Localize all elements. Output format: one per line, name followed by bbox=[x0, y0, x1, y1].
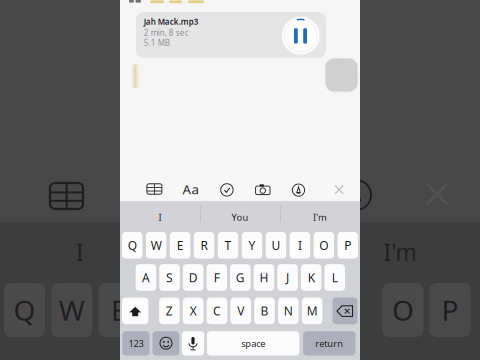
staticText: space bbox=[241, 337, 265, 350]
staticText: D bbox=[189, 269, 198, 285]
button[interactable]: I bbox=[290, 232, 310, 259]
staticText: F bbox=[214, 269, 220, 285]
staticText: Q bbox=[128, 237, 137, 253]
button[interactable]: P bbox=[337, 232, 358, 259]
button[interactable]: E bbox=[170, 232, 190, 259]
staticText: C bbox=[213, 303, 221, 319]
button[interactable]: Y bbox=[242, 232, 262, 259]
button[interactable]: Close bbox=[334, 185, 344, 194]
button[interactable]: O bbox=[314, 232, 334, 259]
button[interactable]: Z bbox=[159, 298, 180, 324]
staticText: S bbox=[166, 269, 173, 285]
button[interactable]: V bbox=[230, 298, 251, 324]
staticText: V bbox=[237, 303, 244, 319]
staticText: N bbox=[284, 303, 293, 319]
button[interactable]: return bbox=[303, 331, 355, 356]
button[interactable]: 123 bbox=[122, 331, 150, 356]
button[interactable]: F bbox=[206, 264, 227, 291]
staticText: G bbox=[236, 269, 245, 285]
staticText: K bbox=[308, 269, 315, 285]
staticText: Q bbox=[13, 291, 35, 329]
button[interactable]: M bbox=[302, 298, 322, 324]
button[interactable]: Table bbox=[147, 184, 162, 194]
staticText: Aa bbox=[182, 180, 198, 198]
staticText: I'm bbox=[383, 237, 416, 267]
staticText: return bbox=[315, 337, 343, 350]
staticText: I bbox=[76, 237, 84, 267]
button[interactable]: Checklist bbox=[221, 184, 233, 196]
button[interactable]: You bbox=[200, 204, 280, 230]
button[interactable]: Emoji bbox=[152, 331, 179, 356]
button[interactable]: J bbox=[277, 264, 298, 291]
staticText: P bbox=[344, 237, 351, 253]
staticText: E bbox=[177, 237, 184, 253]
staticText: Jah Mack.mp3 bbox=[144, 16, 199, 27]
staticText: E bbox=[111, 291, 127, 329]
staticText: I bbox=[298, 237, 302, 253]
button[interactable]: Pause bbox=[281, 16, 321, 56]
staticText: W bbox=[151, 237, 162, 253]
button[interactable]: Q bbox=[122, 232, 142, 259]
button[interactable]: I bbox=[120, 204, 200, 230]
button[interactable]: Camera bbox=[256, 184, 270, 195]
button[interactable]: T bbox=[218, 232, 238, 259]
button[interactable]: Delete bbox=[332, 298, 357, 324]
button[interactable]: H bbox=[254, 264, 274, 291]
staticText: 123 bbox=[128, 337, 143, 350]
staticText: U bbox=[271, 237, 280, 253]
staticText: X bbox=[190, 303, 197, 319]
button[interactable]: C bbox=[207, 298, 227, 324]
staticText: 5.1 MB bbox=[144, 37, 170, 48]
staticText: Y bbox=[248, 237, 255, 253]
button[interactable]: Text format bbox=[178, 183, 202, 195]
button[interactable]: G bbox=[230, 264, 251, 291]
button[interactable]: X bbox=[183, 298, 203, 324]
staticText: 2 min, 8 sec bbox=[144, 27, 189, 38]
button[interactable]: Dictate bbox=[182, 331, 204, 356]
staticText: T bbox=[224, 237, 231, 253]
button[interactable]: U bbox=[266, 232, 286, 259]
staticText: I bbox=[158, 211, 161, 223]
staticText: M bbox=[307, 303, 318, 319]
button[interactable]: W bbox=[146, 232, 166, 259]
button[interactable]: A bbox=[136, 264, 156, 291]
staticText: R bbox=[201, 237, 208, 253]
button[interactable]: I'm bbox=[280, 204, 360, 230]
button[interactable]: D bbox=[183, 264, 203, 291]
button[interactable]: Markup bbox=[292, 184, 305, 196]
button[interactable]: space bbox=[207, 331, 299, 356]
button[interactable]: K bbox=[301, 264, 321, 291]
button[interactable]: S bbox=[159, 264, 180, 291]
staticText: W bbox=[59, 291, 85, 329]
staticText: Z bbox=[166, 303, 173, 319]
staticText: O bbox=[319, 237, 328, 253]
button[interactable]: B bbox=[254, 298, 275, 324]
staticText: I'm bbox=[313, 211, 327, 223]
button[interactable]: N bbox=[278, 298, 299, 324]
button[interactable]: R bbox=[194, 232, 214, 259]
staticText: B bbox=[261, 303, 269, 319]
staticText: O bbox=[392, 291, 414, 329]
staticText: H bbox=[259, 269, 268, 285]
staticText: You bbox=[231, 211, 248, 223]
button[interactable]: Shift bbox=[122, 298, 148, 324]
staticText: A bbox=[142, 269, 150, 285]
staticText: J bbox=[286, 269, 289, 285]
button[interactable]: L bbox=[324, 264, 345, 291]
staticText: L bbox=[332, 269, 338, 285]
staticText: P bbox=[442, 291, 459, 329]
